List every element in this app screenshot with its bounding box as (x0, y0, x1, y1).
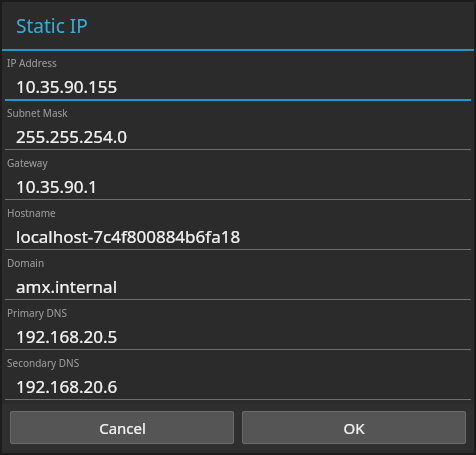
staticText: amx.internal (16, 275, 118, 298)
staticText: Cancel (99, 418, 146, 438)
button[interactable]: Secondary DNS (2, 353, 474, 403)
button[interactable]: Cancel (10, 411, 234, 444)
staticText: 192.168.20.6 (16, 375, 118, 398)
staticText: Secondary DNS (7, 356, 80, 370)
staticText: Static IP (16, 13, 88, 39)
button[interactable]: Domain (2, 253, 474, 303)
staticText: Primary DNS (7, 306, 67, 320)
staticText: 10.35.90.155 (16, 75, 118, 98)
button[interactable]: Hostname (2, 203, 474, 253)
staticText: Domain (7, 256, 45, 270)
staticText: Subnet Mask (7, 106, 68, 120)
staticText: 10.35.90.1 (16, 175, 98, 198)
staticText: OK (343, 418, 365, 438)
staticText: IP Address (7, 56, 57, 70)
staticText: 192.168.20.5 (16, 325, 118, 348)
staticText: Hostname (7, 206, 56, 220)
staticText: Gateway (7, 156, 48, 170)
button[interactable]: Gateway (2, 153, 474, 203)
button[interactable]: OK (242, 411, 466, 444)
button[interactable]: Primary DNS (2, 303, 474, 353)
staticText: localhost-7c4f800884b6fa18 (16, 225, 241, 248)
button[interactable]: IP Address (2, 53, 474, 103)
button[interactable]: Subnet Mask (2, 103, 474, 153)
staticText: 255.255.254.0 (16, 125, 127, 148)
